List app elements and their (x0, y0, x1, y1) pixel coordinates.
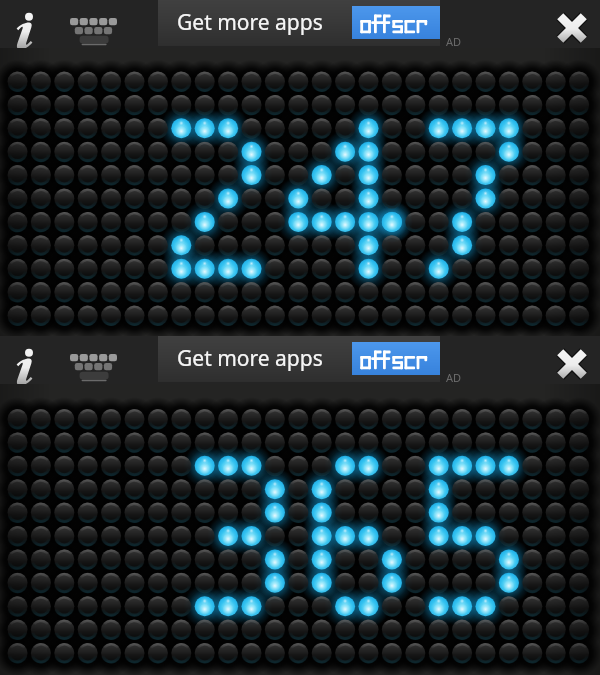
button[interactable]: Info (4, 2, 48, 46)
staticText: Get more apps (177, 8, 323, 37)
button[interactable]: Close ad (552, 344, 592, 384)
other: offscr (352, 342, 440, 375)
button[interactable]: Info (4, 338, 48, 382)
button[interactable]: Keyboard (66, 5, 124, 47)
staticText: Get more apps (177, 344, 323, 373)
button[interactable]: Close ad (552, 8, 592, 48)
other: offscr (352, 6, 440, 39)
staticText: AD (446, 34, 462, 49)
button[interactable]: Keyboard (66, 341, 124, 383)
button[interactable]: Get more apps (158, 0, 440, 46)
staticText: AD (446, 370, 462, 385)
button[interactable]: Get more apps (158, 336, 440, 382)
